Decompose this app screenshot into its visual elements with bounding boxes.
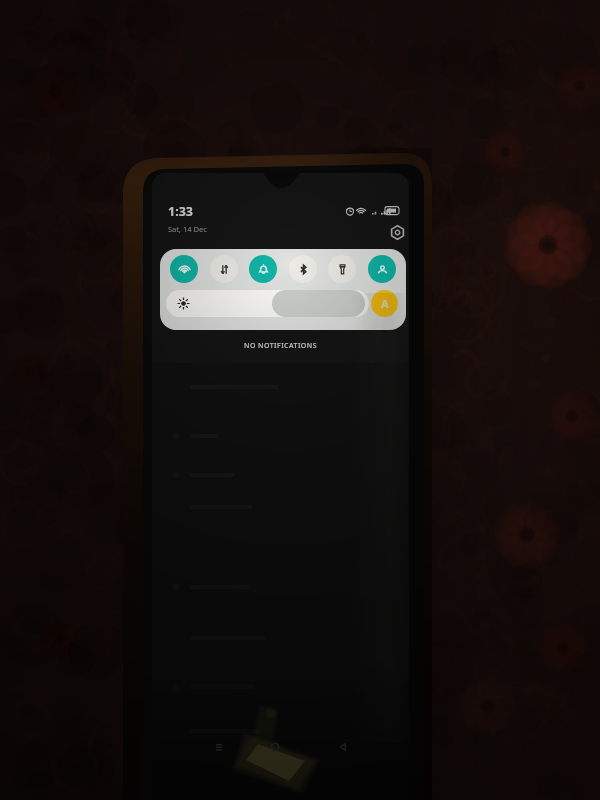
staticText: Sat, 14 Dec — [168, 224, 207, 234]
staticText: A — [381, 296, 389, 311]
button[interactable]: Settings — [390, 225, 405, 240]
button[interactable]: Flashlight — [328, 255, 356, 283]
button[interactable]: Mobile data — [210, 255, 238, 283]
staticText: NO NOTIFICATIONS — [152, 341, 409, 351]
button[interactable]: Location — [368, 255, 396, 283]
staticText: 1:33 — [168, 203, 193, 220]
button[interactable]: Bluetooth — [289, 255, 317, 283]
button[interactable]: Recent apps — [208, 736, 230, 758]
button[interactable]: Wi-Fi — [170, 255, 198, 283]
button[interactable]: Auto brightness — [371, 290, 398, 317]
button[interactable]: Back — [332, 736, 354, 758]
button[interactable]: Sound — [249, 255, 277, 283]
button[interactable]: Home — [264, 736, 286, 758]
button[interactable]: Brightness — [166, 290, 369, 317]
